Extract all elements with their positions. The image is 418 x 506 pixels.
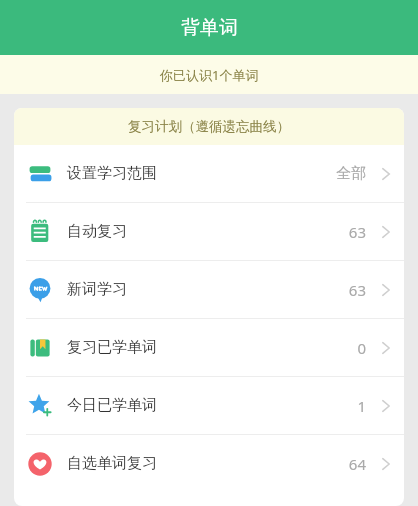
- staticText: 63: [348, 222, 366, 242]
- staticText: 背单词: [181, 16, 238, 40]
- button[interactable]: Auto review: [14, 203, 404, 260]
- staticText: 全部: [336, 164, 366, 183]
- button[interactable]: Custom word review: [14, 435, 404, 492]
- staticText: 自选单词复习: [67, 454, 157, 473]
- staticText: 复习已学单词: [67, 338, 157, 357]
- staticText: 0: [357, 338, 366, 358]
- staticText: 你已认识1个单词: [160, 66, 259, 84]
- other: Books: [27, 161, 53, 187]
- staticText: 1: [357, 396, 366, 416]
- button[interactable]: Today learned words: [14, 377, 404, 434]
- other: New words: [27, 277, 53, 303]
- other: Custom word review: [27, 451, 53, 477]
- staticText: 今日已学单词: [67, 396, 157, 415]
- staticText: 自动复习: [67, 222, 127, 241]
- staticText: 新词学习: [67, 280, 127, 299]
- other: Auto review: [27, 219, 53, 245]
- button[interactable]: Books: [14, 145, 404, 202]
- other: Today learned words: [27, 393, 53, 419]
- staticText: 63: [348, 280, 366, 300]
- button[interactable]: New words: [14, 261, 404, 318]
- staticText: 64: [348, 454, 366, 474]
- staticText: 设置学习范围: [67, 164, 157, 183]
- other: Review learned words: [27, 335, 53, 361]
- button[interactable]: Review learned words: [14, 319, 404, 376]
- staticText: 复习计划（遵循遗忘曲线）: [128, 118, 290, 135]
